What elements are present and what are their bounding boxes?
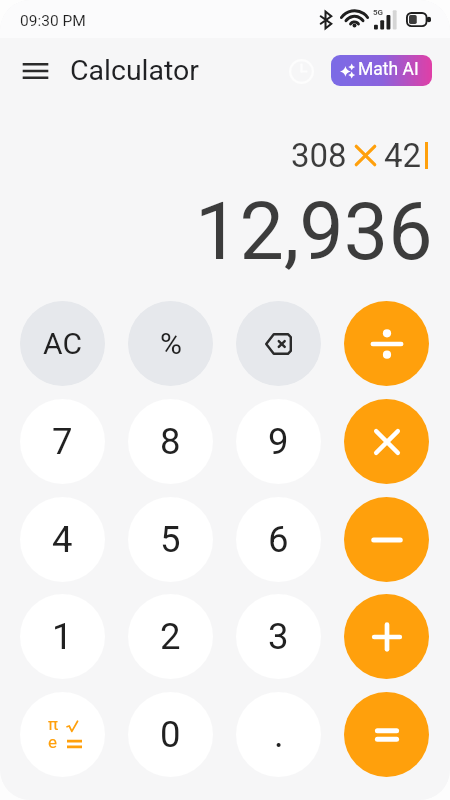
- button[interactable]: Subtract: [344, 497, 429, 582]
- staticText: 4: [52, 518, 73, 561]
- button[interactable]: Backspace: [236, 301, 321, 386]
- button[interactable]: 6: [236, 497, 321, 582]
- button[interactable]: Menu: [12, 48, 58, 94]
- staticText: 8: [160, 420, 181, 463]
- staticText: 09:30 PM: [20, 12, 86, 30]
- button[interactable]: %: [128, 301, 213, 386]
- button[interactable]: 2: [128, 594, 213, 679]
- staticText: 7: [52, 420, 73, 463]
- staticText: 308: [291, 136, 347, 175]
- button[interactable]: Divide: [344, 301, 429, 386]
- button[interactable]: Math AI: [331, 55, 432, 86]
- button[interactable]: Scientific functions: [20, 692, 105, 777]
- staticText: .: [274, 713, 284, 756]
- staticText: 12,936: [195, 186, 433, 279]
- staticText: 42: [384, 136, 422, 175]
- button[interactable]: Equals: [344, 692, 429, 777]
- button[interactable]: 0: [128, 692, 213, 777]
- button[interactable]: 9: [236, 399, 321, 484]
- staticText: %: [160, 326, 182, 361]
- button[interactable]: AC: [20, 301, 105, 386]
- staticText: AC: [43, 326, 82, 361]
- staticText: 6: [268, 518, 289, 561]
- button[interactable]: .: [236, 692, 321, 777]
- staticText: 1: [52, 615, 73, 658]
- staticText: 0: [160, 713, 181, 756]
- staticText: 5: [160, 518, 181, 561]
- staticText: Calculator: [70, 54, 200, 87]
- staticText: e: [48, 732, 58, 752]
- button[interactable]: 4: [20, 497, 105, 582]
- staticText: 2: [160, 615, 181, 658]
- button[interactable]: 3: [236, 594, 321, 679]
- staticText: 5G: [373, 8, 384, 17]
- staticText: π: [48, 714, 59, 734]
- button[interactable]: 7: [20, 399, 105, 484]
- staticText: Math AI: [358, 59, 419, 80]
- staticText: 9: [268, 420, 289, 463]
- button[interactable]: Add: [344, 594, 429, 679]
- button[interactable]: Multiply: [344, 399, 429, 484]
- button[interactable]: 1: [20, 594, 105, 679]
- button[interactable]: 8: [128, 399, 213, 484]
- staticText: 3: [268, 615, 289, 658]
- button[interactable]: 5: [128, 497, 213, 582]
